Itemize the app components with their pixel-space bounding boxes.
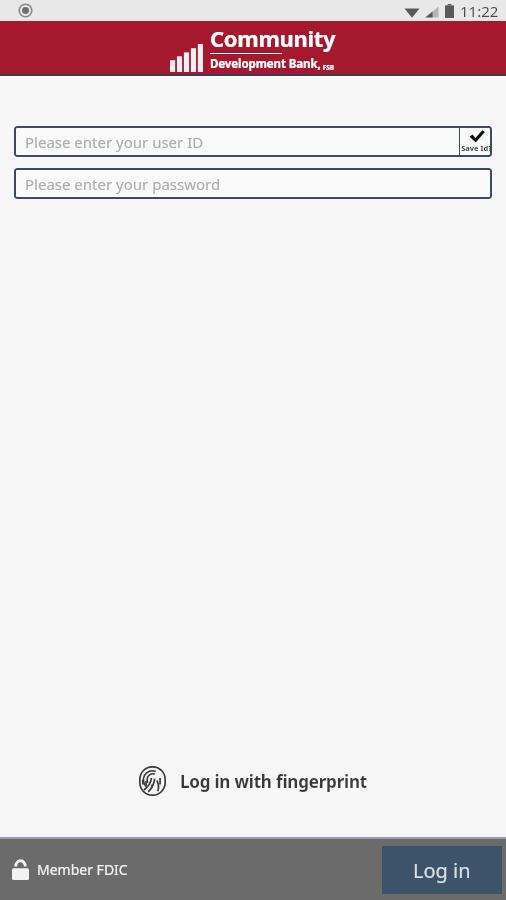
button[interactable]: Please enter your password xyxy=(14,168,492,199)
staticText: Log in xyxy=(413,857,471,884)
staticText: Save Id? xyxy=(461,143,492,153)
button[interactable]: Please enter your user ID xyxy=(14,126,459,157)
staticText: FSB xyxy=(321,63,335,72)
button[interactable]: Member FDIC xyxy=(12,859,128,880)
staticText: Please enter your user ID xyxy=(25,132,204,152)
staticText: 11:22 xyxy=(460,1,499,21)
staticText: Please enter your password xyxy=(25,174,221,194)
button[interactable]: Log in xyxy=(382,846,502,894)
button[interactable]: Save Id xyxy=(460,126,492,157)
staticText: Member FDIC xyxy=(37,860,128,879)
staticText: Community xyxy=(210,23,336,53)
button[interactable]: Log in with fingerprint xyxy=(0,759,506,803)
staticText: Development Bank, xyxy=(210,56,321,72)
staticText: Log in with fingerprint xyxy=(180,770,367,793)
